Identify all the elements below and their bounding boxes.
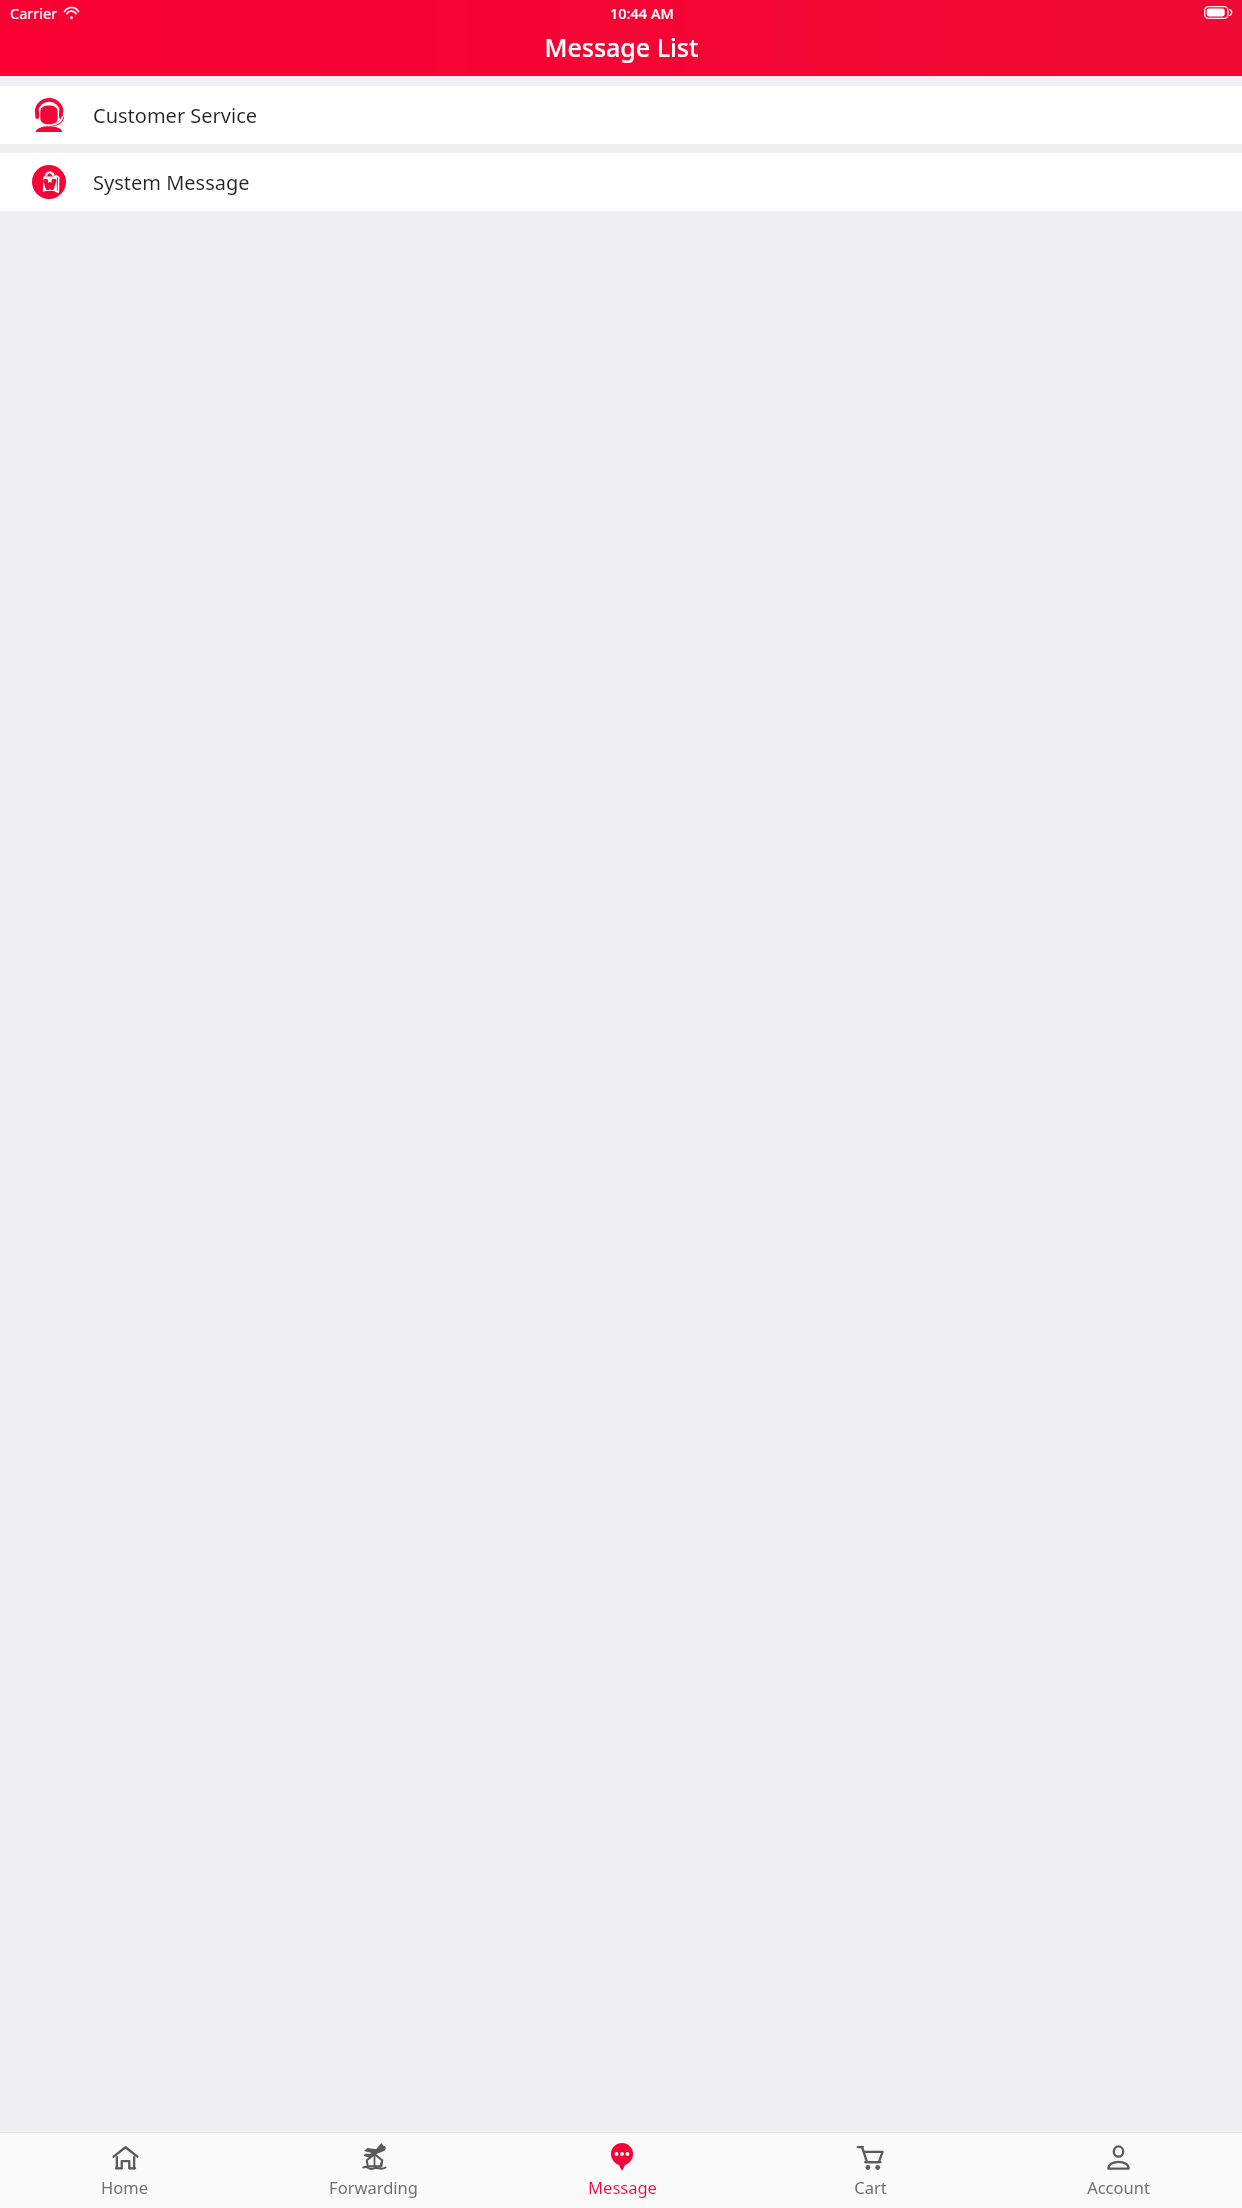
button[interactable]: Home [0,2133,249,2208]
staticText: Home [101,2176,148,2198]
staticText: Message [588,2176,657,2198]
staticText: Customer Service [93,102,258,129]
staticText: Forwarding [329,2176,418,2198]
staticText: Account [1087,2176,1150,2198]
other: Message [608,2143,636,2171]
other: Home [112,2144,139,2171]
button[interactable]: Customer Service [0,86,1242,144]
staticText: Message List [544,30,699,64]
staticText: System Message [93,169,250,196]
button[interactable]: Cart [746,2133,994,2208]
button[interactable]: Account [994,2133,1242,2208]
other: Account [1105,2144,1132,2171]
button[interactable]: System Message [0,153,1242,211]
other: Cart [856,2143,884,2171]
staticText: Cart [854,2176,887,2198]
button[interactable]: Forwarding [249,2133,498,2208]
other: Forwarding [360,2143,389,2172]
staticText: 10:44 AM [610,3,674,23]
staticText: Carrier [10,3,58,23]
button[interactable]: Message [498,2133,746,2208]
